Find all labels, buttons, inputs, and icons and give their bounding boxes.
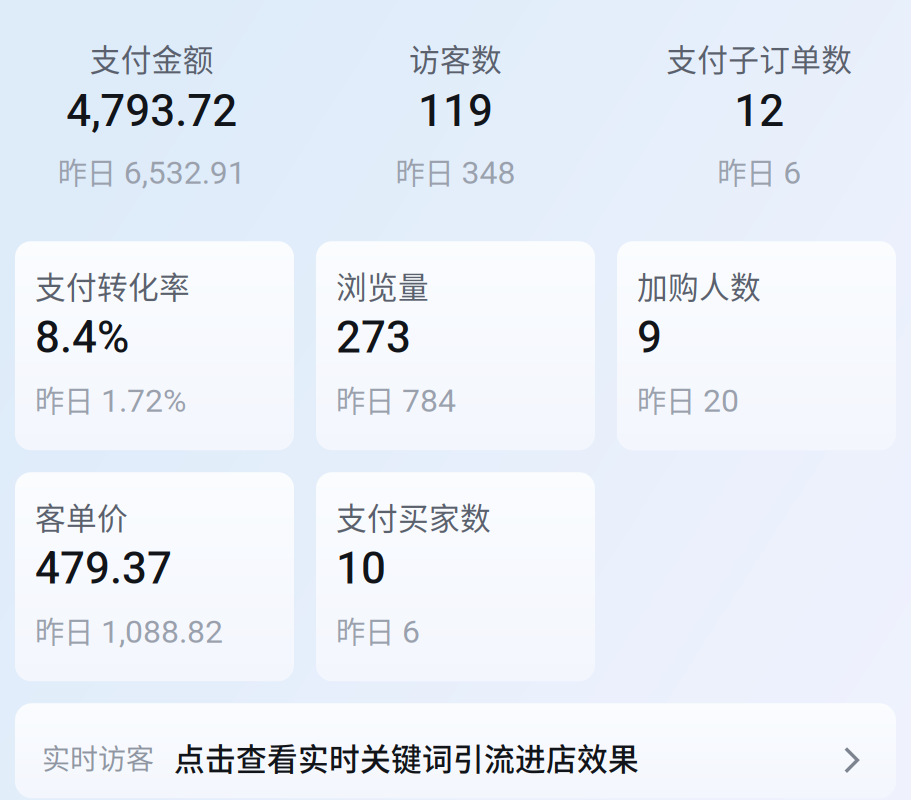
staticText: 访客数 [409, 36, 502, 80]
button[interactable]: 支付金额 [0, 36, 304, 192]
staticText: 点击查看实时关键词引流进店效果 [174, 735, 639, 779]
staticText: 支付转化率 [35, 263, 190, 308]
staticText: 10 [336, 543, 386, 594]
staticText: 实时访客 [42, 737, 154, 777]
staticText: 昨日 [717, 150, 775, 192]
button[interactable]: 访客数 [304, 36, 607, 192]
button[interactable]: 加购人数 [617, 241, 896, 450]
staticText: 昨日 [395, 150, 453, 192]
staticText: 加购人数 [637, 263, 761, 308]
staticText: 6 [394, 613, 420, 651]
staticText: 6,532.91 [116, 154, 246, 192]
button[interactable]: 实时访客 [15, 703, 896, 798]
staticText: 昨日 [58, 150, 116, 192]
staticText: 1,088.82 [93, 613, 223, 651]
staticText: 昨日 [336, 609, 394, 651]
staticText: 昨日 [35, 378, 93, 420]
staticText: 昨日 [637, 378, 695, 420]
staticText: 119 [418, 85, 493, 137]
staticText: 273 [336, 312, 411, 363]
staticText: 昨日 [336, 378, 394, 420]
staticText: 支付买家数 [336, 494, 491, 539]
staticText: 6 [775, 154, 801, 192]
button[interactable]: 浏览量 [316, 241, 595, 450]
button[interactable]: 客单价 [15, 472, 294, 681]
staticText: 12 [734, 85, 784, 137]
staticText: 348 [453, 154, 515, 192]
staticText: 20 [695, 382, 739, 420]
staticText: 4,793.72 [66, 85, 237, 137]
staticText: 1.72% [93, 382, 186, 420]
staticText: 8.4% [35, 312, 129, 363]
staticText: 支付金额 [90, 36, 214, 80]
staticText: 784 [394, 382, 456, 420]
staticText: 479.37 [35, 543, 172, 594]
button[interactable]: 支付转化率 [15, 241, 294, 450]
staticText: 9 [637, 312, 662, 363]
staticText: 昨日 [35, 609, 93, 651]
staticText: 浏览量 [336, 263, 429, 308]
button[interactable]: 支付子订单数 [607, 36, 911, 192]
staticText: 客单价 [35, 494, 128, 539]
button[interactable]: 支付买家数 [316, 472, 595, 681]
staticText: 支付子订单数 [666, 36, 852, 80]
